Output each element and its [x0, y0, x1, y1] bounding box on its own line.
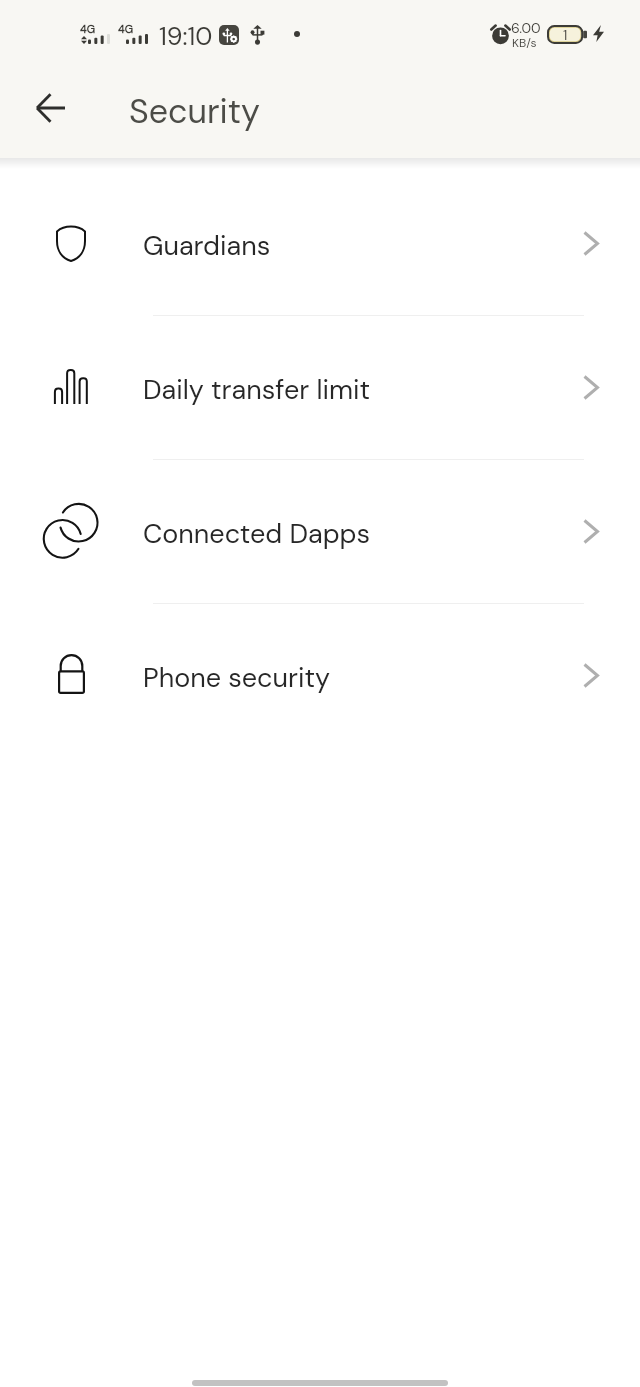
staticText: 6.00 — [511, 19, 541, 37]
button[interactable]: Connected Dapps — [0, 459, 640, 603]
button[interactable]: Phone security — [0, 603, 640, 747]
staticText: Daily transfer limit — [143, 372, 371, 407]
staticText: KB/s — [512, 35, 537, 51]
staticText: 4G — [118, 22, 134, 36]
staticText: 1 — [563, 26, 568, 44]
staticText: 4G — [80, 22, 96, 36]
staticText: Phone security — [143, 660, 331, 695]
button[interactable]: Back — [14, 72, 86, 144]
button[interactable]: Daily transfer limit — [0, 315, 640, 459]
staticText: Connected Dapps — [143, 516, 371, 551]
staticText: 19:10 — [159, 20, 213, 53]
staticText: Security — [129, 89, 260, 133]
button[interactable]: Guardians — [0, 171, 640, 315]
staticText: Guardians — [143, 228, 271, 263]
